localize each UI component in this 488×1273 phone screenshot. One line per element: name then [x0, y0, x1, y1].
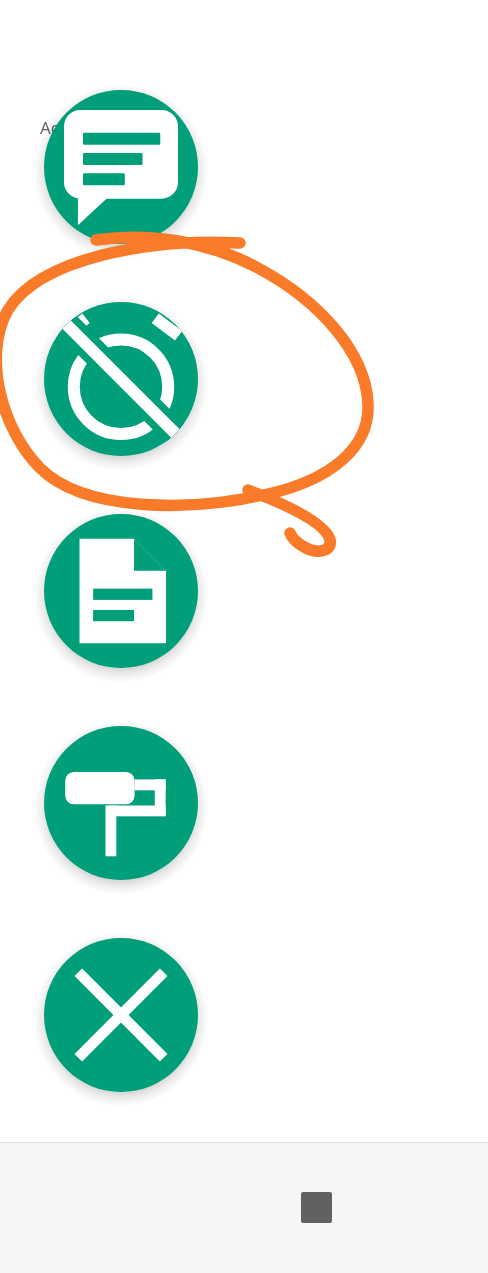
button[interactable]: Close — [44, 938, 198, 1092]
button[interactable]: Paint — [44, 726, 198, 880]
staticText: Add a shortcut — [40, 116, 158, 139]
button[interactable]: Message — [44, 90, 198, 244]
button[interactable]: Document — [44, 514, 198, 668]
button[interactable]: Alarm off — [44, 302, 198, 456]
button[interactable]: Recents — [301, 1192, 332, 1223]
